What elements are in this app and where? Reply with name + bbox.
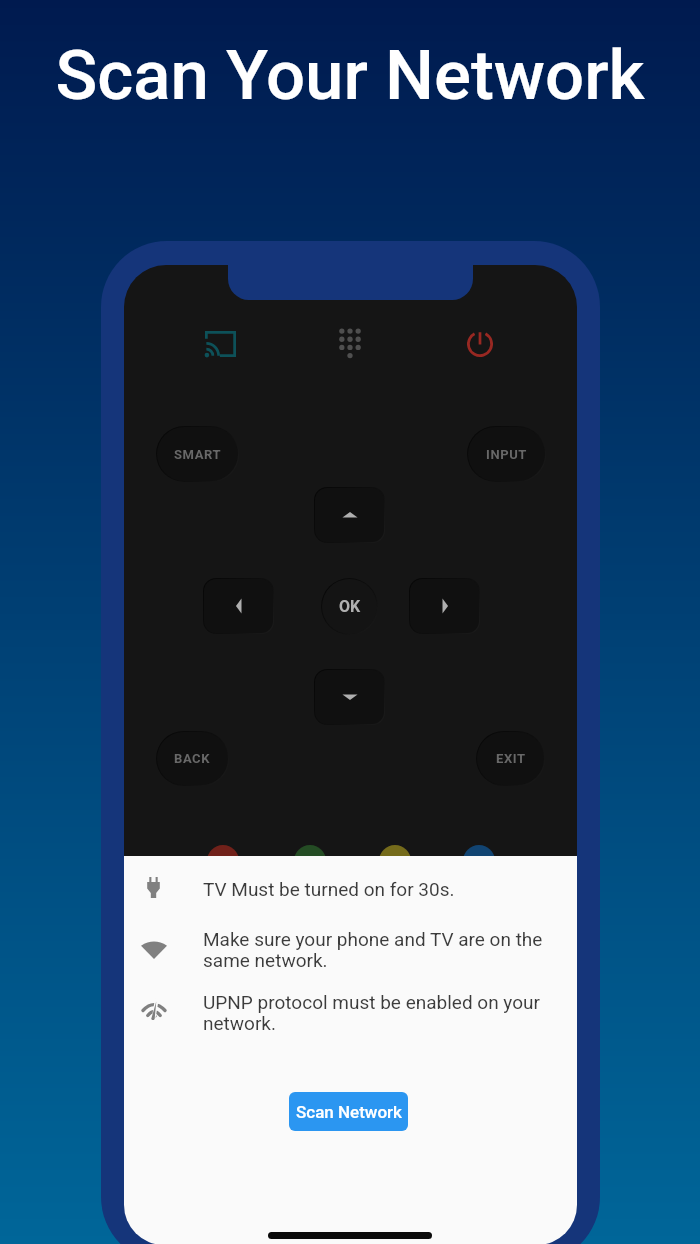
- staticText: OK: [339, 597, 361, 616]
- staticText: SMART: [174, 447, 222, 462]
- button[interactable]: Cast: [194, 318, 246, 370]
- button[interactable]: Down: [314, 669, 385, 725]
- staticText: INPUT: [486, 447, 527, 462]
- button[interactable]: Colour key: [463, 845, 495, 877]
- staticText: UPNP protocol must be enabled on your ne…: [203, 991, 540, 1034]
- button[interactable]: Colour key: [207, 845, 239, 877]
- button[interactable]: BACK: [156, 731, 229, 786]
- button[interactable]: Colour key: [379, 845, 411, 877]
- button[interactable]: Power: [454, 318, 506, 370]
- button[interactable]: Colour key: [294, 845, 326, 877]
- staticText: Scan Network: [296, 1102, 402, 1122]
- button[interactable]: INPUT: [467, 426, 546, 482]
- button[interactable]: Dial pad: [324, 320, 376, 372]
- button[interactable]: EXIT: [476, 731, 545, 786]
- button[interactable]: OK: [321, 578, 378, 635]
- button[interactable]: Left: [203, 578, 274, 634]
- button[interactable]: Right: [409, 578, 480, 634]
- staticText: TV Must be turned on for 30s.: [203, 878, 455, 900]
- staticText: Scan Your Network: [55, 35, 645, 116]
- button[interactable]: Up: [314, 487, 385, 543]
- button[interactable]: Scan Network: [289, 1092, 408, 1131]
- staticText: BACK: [174, 751, 211, 766]
- staticText: EXIT: [496, 751, 526, 766]
- button[interactable]: SMART: [156, 426, 239, 482]
- staticText: Make sure your phone and TV are on the s…: [203, 928, 543, 971]
